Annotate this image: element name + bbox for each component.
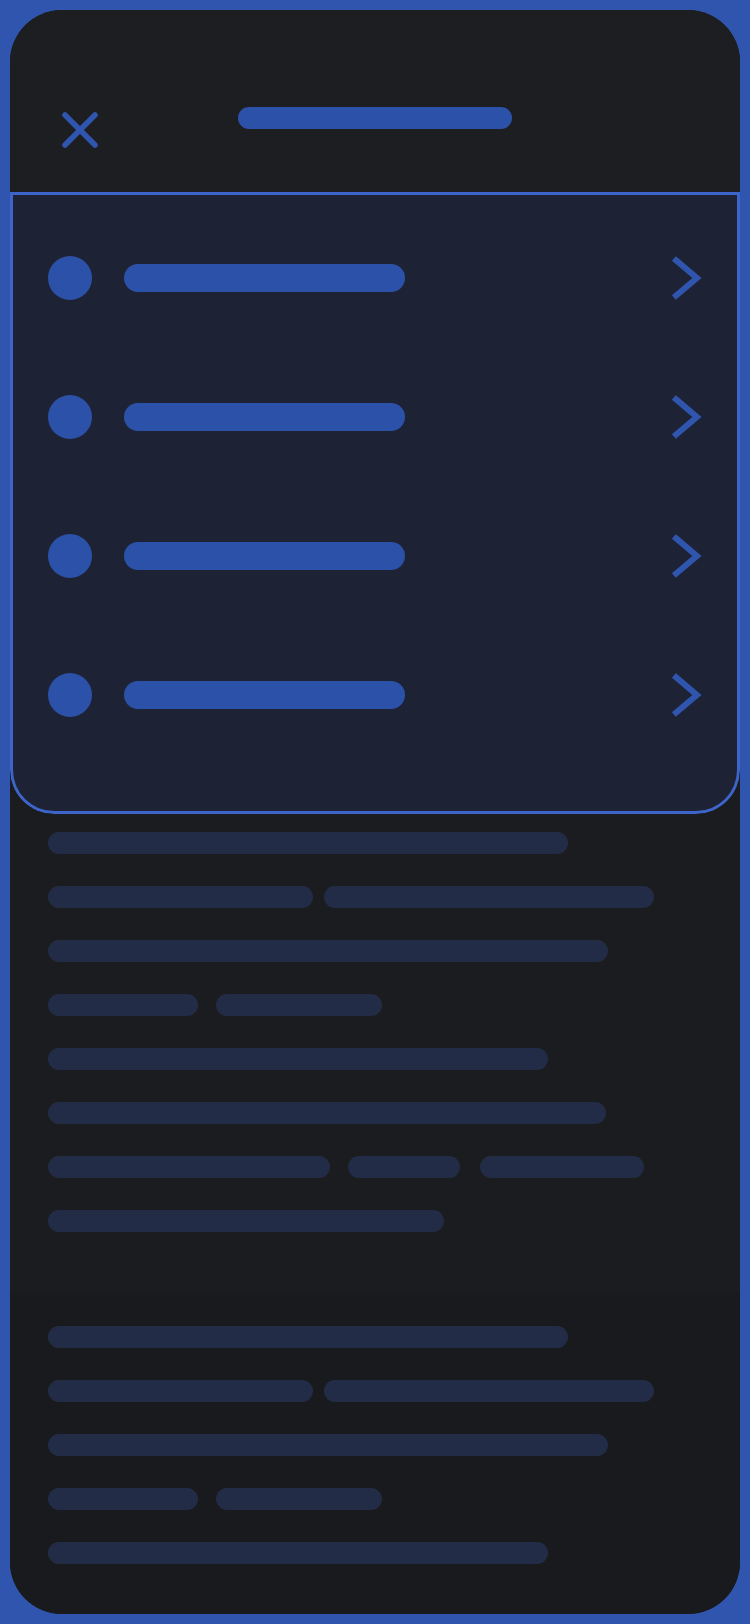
button[interactable]: Open item [10,508,740,604]
button[interactable]: Close [36,86,124,174]
button[interactable]: Open item [10,230,740,326]
button[interactable]: Open item [10,369,740,465]
button[interactable]: Open item [10,647,740,743]
other: Open item [658,528,714,584]
other: Open item [658,250,714,306]
other: Open item [658,389,714,445]
other: Open item [658,667,714,723]
